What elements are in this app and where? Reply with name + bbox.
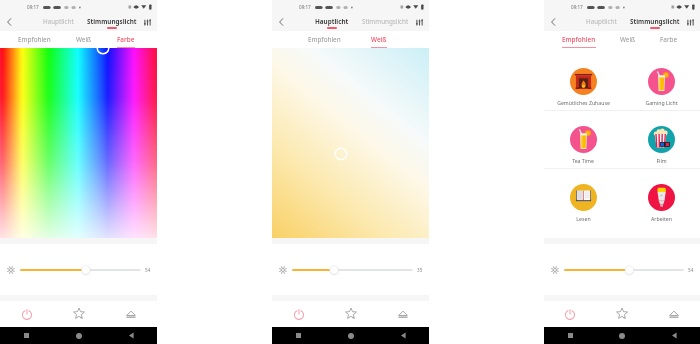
button[interactable]: Settings [685,17,696,28]
button[interactable]: Home [596,327,648,344]
staticText: Stimmungslicht [362,17,409,26]
button[interactable]: Tea Time [544,111,622,169]
staticText: 54 [688,267,694,273]
staticText: Empfohlen [18,35,51,44]
button[interactable]: Favorites [596,301,648,327]
button[interactable]: Stimmungslicht [361,17,410,29]
staticText: Empfohlen [562,35,596,44]
staticText: Hauptlicht [315,17,349,26]
button[interactable]: Back [2,15,16,29]
button[interactable]: Farbe [656,31,682,48]
button[interactable]: Back [546,15,560,29]
button[interactable]: Weiß [616,31,640,48]
button[interactable]: Brightness [278,265,288,275]
button[interactable]: Power [272,301,325,327]
button[interactable]: Weiß [72,31,96,48]
button[interactable]: Power [544,301,596,327]
button[interactable]: Back [648,327,700,344]
button[interactable]: Favorites [325,301,377,327]
staticText: 09:17 [571,4,583,10]
button[interactable]: Recents [272,327,325,344]
staticText: Stimmungslicht [87,17,137,26]
staticText: Stimmungslicht [630,17,680,26]
button[interactable]: Weiß [367,31,391,48]
button[interactable]: Home [648,301,700,327]
button[interactable]: Home [105,301,157,327]
button[interactable]: Home [325,327,377,344]
button[interactable]: Temperature selector [334,147,348,161]
button[interactable]: Gaming Licht [622,53,700,111]
staticText: Gaming Licht [645,99,678,106]
staticText: 35 [417,267,423,273]
button[interactable]: Stimmungslicht [629,17,681,29]
button[interactable]: Arbeiten [622,169,700,227]
button[interactable]: Favorites [53,301,105,327]
staticText: Hauptlicht [586,17,617,26]
staticText: 09:17 [299,4,311,10]
button[interactable]: Stimmungslicht [86,17,138,29]
button[interactable]: Empfohlen [558,31,600,48]
button[interactable]: Gemütliches Zuhause [544,53,622,111]
button[interactable]: Empfohlen [14,31,55,48]
button[interactable]: Hauptlicht [585,17,618,29]
staticText: Farbe [117,35,135,44]
staticText: Arbeiten [651,215,672,222]
button[interactable] [21,264,140,276]
button[interactable]: Brightness [6,265,16,275]
button[interactable]: Back [105,327,157,344]
staticText: 54 [145,267,151,273]
button[interactable]: Hauptlicht [42,17,75,29]
button[interactable]: Color selector [96,41,110,55]
staticText: Tea Time [572,157,594,164]
button[interactable]: Settings [414,17,425,28]
staticText: Weiß [76,35,92,44]
button[interactable]: Back [274,15,288,29]
staticText: Lesen [576,215,591,222]
button[interactable] [565,264,683,276]
button[interactable]: Farbe [113,31,139,48]
staticText: Film [656,157,667,164]
button[interactable]: Brightness [550,265,560,275]
button[interactable]: Hauptlicht [314,17,350,29]
button[interactable]: Home [377,301,429,327]
staticText: Hauptlicht [43,17,74,26]
button[interactable]: Empfohlen [304,31,345,48]
button[interactable]: Power [0,301,53,327]
button[interactable]: Recents [544,327,596,344]
staticText: 09:17 [27,4,39,10]
staticText: Weiß [371,35,387,44]
staticText: Weiß [620,35,636,44]
button[interactable] [293,264,412,276]
button[interactable]: Home [53,327,105,344]
button[interactable]: Lesen [544,169,622,227]
button[interactable]: Back [377,327,429,344]
staticText: Empfohlen [308,35,341,44]
button[interactable]: Settings [142,17,153,28]
staticText: Gemütliches Zuhause [557,99,610,106]
button[interactable]: Recents [0,327,53,344]
staticText: Farbe [660,35,678,44]
button[interactable]: Film [622,111,700,169]
